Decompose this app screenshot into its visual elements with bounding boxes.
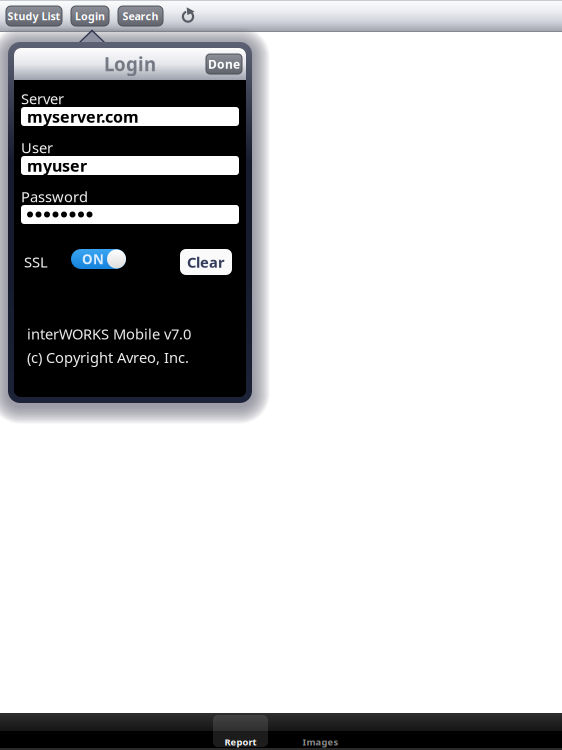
staticText: SSL: [24, 252, 48, 271]
button[interactable]: Images: [293, 713, 348, 750]
staticText: (c) Copyright Avreo, Inc.: [27, 347, 189, 367]
button[interactable]: SSL on: [71, 249, 126, 269]
staticText: interWORKS Mobile v7.0: [27, 324, 191, 343]
button[interactable]: Done: [206, 54, 242, 74]
button[interactable]: Login: [71, 6, 109, 26]
staticText: Login: [75, 9, 105, 23]
staticText: ON: [82, 250, 104, 268]
button[interactable]: Study List: [6, 6, 62, 26]
staticText: Images: [302, 736, 338, 748]
button[interactable]: Search: [118, 6, 163, 26]
button[interactable]: Clear: [180, 249, 232, 275]
staticText: User: [21, 138, 53, 157]
staticText: Clear: [187, 252, 225, 272]
staticText: myuser: [27, 155, 87, 176]
staticText: Done: [208, 56, 240, 72]
staticText: Study List: [7, 9, 60, 23]
staticText: Password: [21, 187, 88, 206]
button[interactable]: Report: [213, 713, 268, 750]
staticText: Search: [122, 9, 158, 23]
staticText: Login: [104, 52, 156, 76]
staticText: Server: [21, 89, 64, 108]
staticText: myserver.com: [27, 106, 139, 127]
button[interactable]: Refresh: [172, 7, 195, 25]
staticText: Report: [224, 736, 256, 748]
